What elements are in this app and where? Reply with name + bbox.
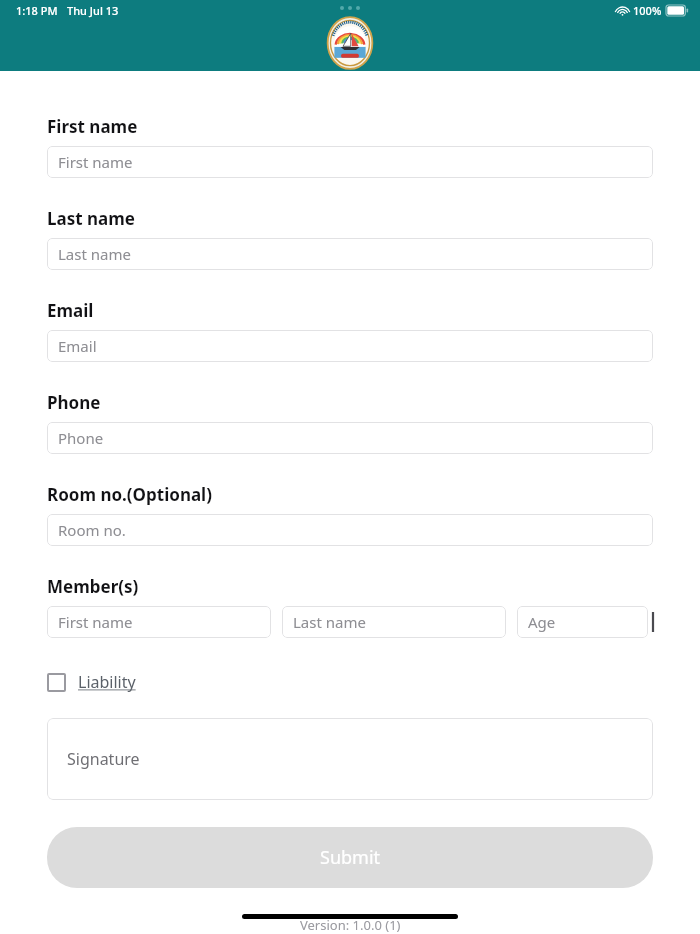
- button[interactable]: Submit: [47, 827, 653, 888]
- staticText: Submit: [320, 845, 381, 870]
- button[interactable]: First name: [47, 606, 271, 638]
- button[interactable]: Signature: [47, 718, 653, 800]
- staticText: Thu Jul 13: [67, 3, 119, 18]
- button[interactable]: Last name: [47, 238, 653, 270]
- staticText: 100%: [633, 3, 662, 18]
- button[interactable]: Phone: [47, 422, 653, 454]
- staticText: Last name: [293, 612, 366, 632]
- staticText: 1:18 PM: [16, 3, 58, 18]
- staticText: First name: [58, 612, 133, 632]
- staticText: Room no.: [58, 520, 126, 540]
- button[interactable]: Age: [517, 606, 648, 638]
- staticText: Email: [58, 336, 97, 356]
- staticText: Phone: [58, 428, 104, 448]
- staticText: First name: [47, 115, 138, 138]
- staticText: Liability: [78, 671, 136, 693]
- button[interactable]: Room no.: [47, 514, 653, 546]
- staticText: Last name: [47, 207, 135, 230]
- staticText: Signature: [67, 748, 140, 770]
- button[interactable]: Liability: [47, 671, 136, 693]
- staticText: First name: [58, 152, 133, 172]
- button[interactable]: Email: [47, 330, 653, 362]
- staticText: Version: 1.0.0 (1): [300, 916, 401, 934]
- staticText: Room no.(Optional): [47, 483, 212, 506]
- staticText: Email: [47, 299, 94, 322]
- staticText: Member(s): [47, 575, 139, 598]
- staticText: Last name: [58, 244, 131, 264]
- staticText: Phone: [47, 391, 101, 414]
- button[interactable]: Last name: [282, 606, 506, 638]
- staticText: Age: [528, 612, 556, 632]
- button[interactable]: First name: [47, 146, 653, 178]
